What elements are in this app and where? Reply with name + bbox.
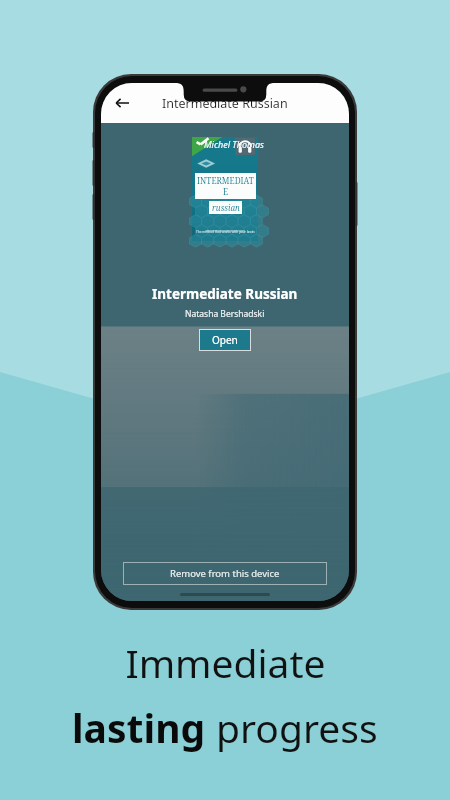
staticText: Remove from this device xyxy=(170,567,280,580)
staticText: Open xyxy=(212,333,238,347)
staticText: Intermediate Russian xyxy=(162,95,288,112)
staticText: russian xyxy=(212,202,240,213)
button[interactable]: Open xyxy=(199,329,251,351)
staticText: lasting xyxy=(72,701,216,754)
staticText: Michel Thomas xyxy=(204,138,264,150)
button[interactable]: Remove from this device xyxy=(123,562,327,585)
staticText: The method that works with your brain xyxy=(196,230,255,234)
button[interactable]: Back xyxy=(107,88,137,118)
staticText: Intermediate Russian xyxy=(152,285,298,303)
staticText: Natasha Bershadski xyxy=(185,308,265,320)
staticText: progress xyxy=(216,701,378,754)
staticText: INTERMEDIATE xyxy=(195,175,256,197)
staticText: Immediate xyxy=(125,636,326,689)
